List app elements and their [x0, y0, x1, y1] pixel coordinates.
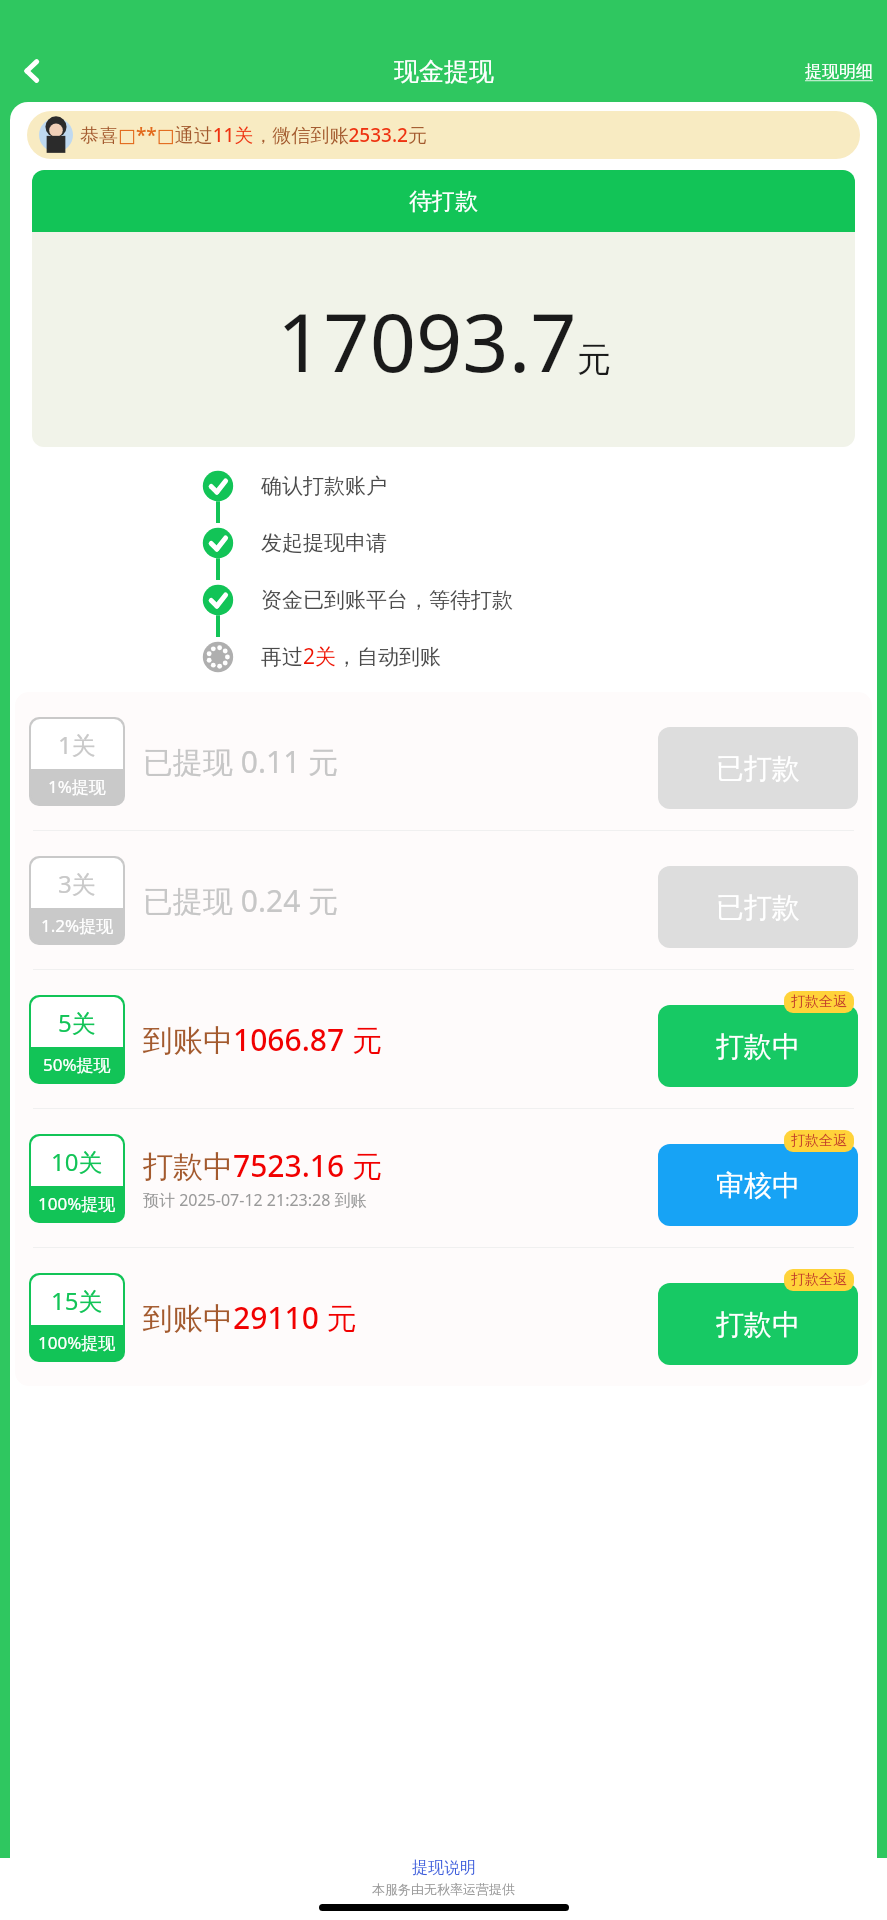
staticText: 提现明细: [805, 61, 873, 82]
staticText: 打款全返: [791, 993, 847, 1011]
staticText: 1.2%提现: [41, 914, 114, 937]
staticText: 5关: [58, 1006, 96, 1039]
button[interactable]: 5关: [15, 970, 872, 1108]
staticText: 本服务由无秋率运营提供: [372, 1881, 515, 1897]
staticText: 3关: [58, 867, 96, 900]
button[interactable]: 提现说明: [412, 1858, 476, 1878]
staticText: 待打款: [409, 187, 478, 216]
staticText: 恭喜□**□通过11关，微信到账2533.2元: [80, 122, 427, 148]
staticText: 打款全返: [791, 1132, 847, 1150]
staticText: 50%提现: [43, 1053, 111, 1076]
staticText: 已提现 0.11 元: [143, 741, 339, 782]
button[interactable]: 提现明细: [805, 61, 873, 82]
staticText: 提现说明: [412, 1858, 476, 1878]
button[interactable]: Back: [6, 45, 58, 97]
button[interactable]: 10关: [15, 1109, 872, 1247]
staticText: 到账中1066.87 元: [143, 1019, 382, 1060]
button[interactable]: 3关: [15, 831, 872, 969]
staticText: 审核中: [716, 1168, 800, 1203]
staticText: 1关: [58, 728, 96, 761]
staticText: 15关: [51, 1284, 103, 1317]
staticText: 打款中7523.16 元: [143, 1145, 382, 1186]
staticText: 资金已到账平台，等待打款: [261, 587, 513, 613]
staticText: 已打款: [716, 751, 800, 786]
staticText: 打款中: [716, 1029, 800, 1064]
button[interactable]: 打款中: [658, 1005, 858, 1087]
staticText: 已提现 0.24 元: [143, 880, 339, 921]
staticText: 到账中29110 元: [143, 1297, 357, 1338]
button[interactable]: 审核中: [658, 1144, 858, 1226]
staticText: 100%提现: [38, 1331, 116, 1354]
staticText: 预计 2025-07-12 21:23:28 到账: [143, 1189, 367, 1211]
button[interactable]: 打款中: [658, 1283, 858, 1365]
button[interactable]: 已打款: [658, 727, 858, 809]
staticText: 100%提现: [38, 1192, 116, 1215]
button[interactable]: 1关: [15, 692, 872, 830]
staticText: 打款全返: [791, 1271, 847, 1289]
button[interactable]: 已打款: [658, 866, 858, 948]
button[interactable]: 15关: [15, 1248, 872, 1386]
staticText: 再过2关，自动到账: [261, 642, 442, 671]
staticText: 已打款: [716, 890, 800, 925]
staticText: 10关: [51, 1145, 103, 1178]
staticText: 确认打款账户: [261, 473, 387, 499]
staticText: 1%提现: [48, 775, 106, 798]
button[interactable]: 恭喜□**□通过11关，微信到账2533.2元: [27, 111, 860, 159]
staticText: 17093.7: [277, 285, 577, 395]
staticText: 元: [577, 338, 611, 381]
staticText: 现金提现: [394, 56, 494, 87]
staticText: 打款中: [716, 1307, 800, 1342]
staticText: 发起提现申请: [261, 530, 387, 556]
